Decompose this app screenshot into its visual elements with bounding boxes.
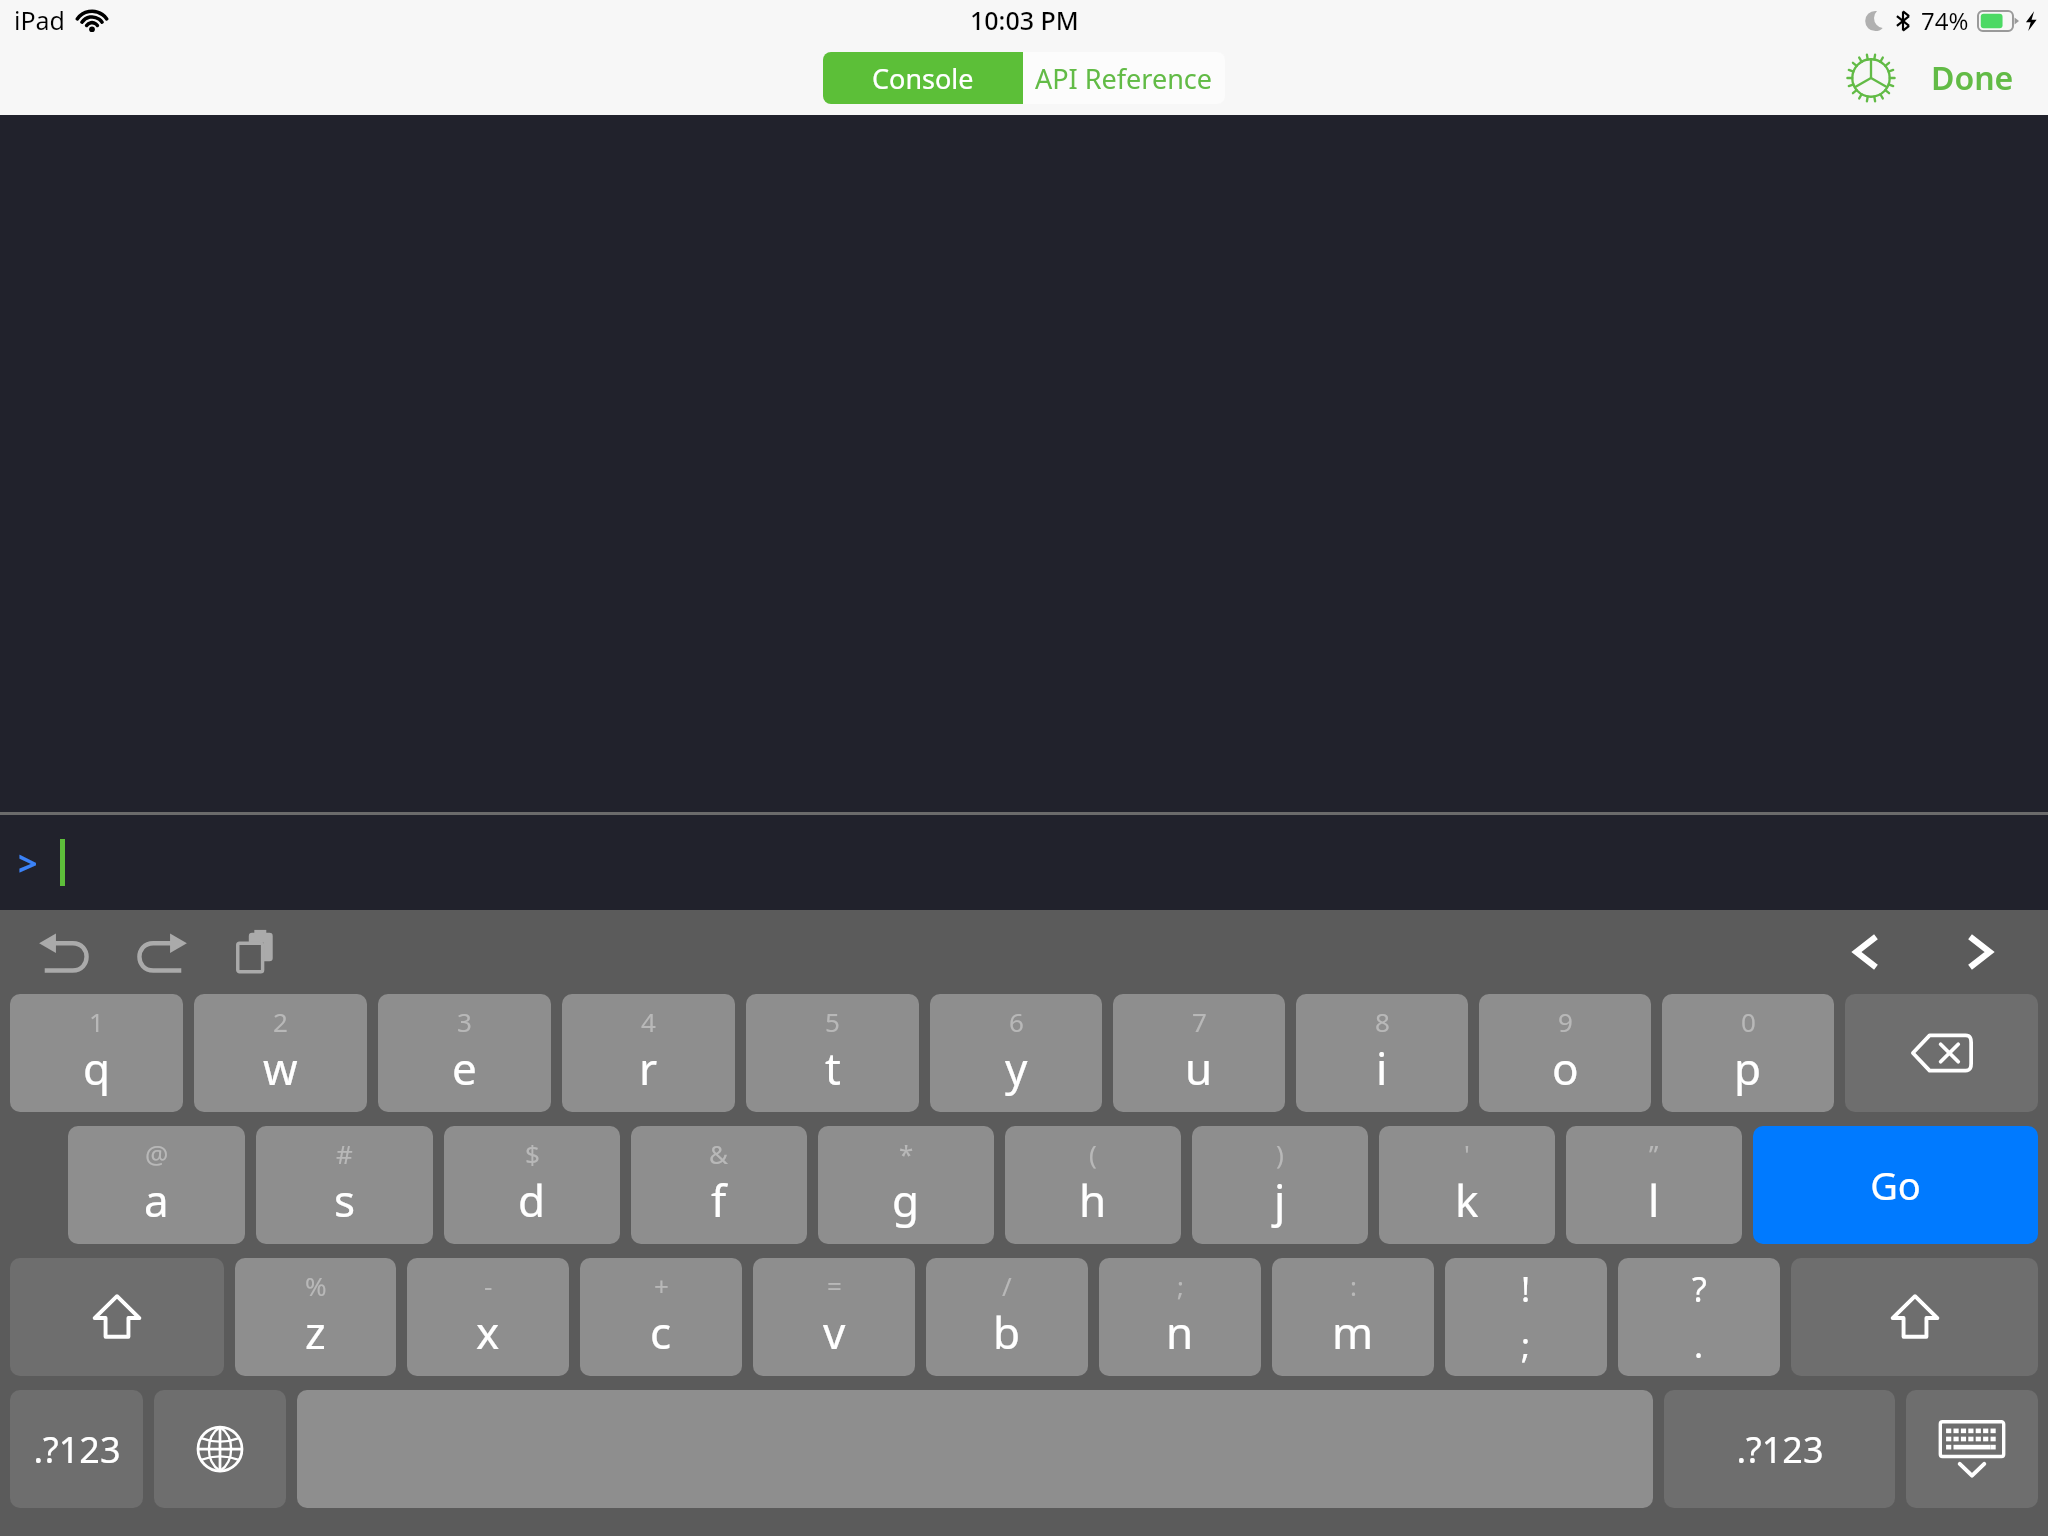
staticText: i [1376, 1038, 1388, 1098]
staticText: ) [1276, 1136, 1284, 1171]
staticText: s [334, 1170, 356, 1230]
staticText: x [476, 1302, 500, 1362]
button[interactable]: 6 [930, 994, 1102, 1112]
button[interactable]: Hide keyboard [1906, 1390, 2038, 1508]
staticText: > [18, 840, 38, 886]
staticText: API Reference [1035, 60, 1213, 97]
staticText: p [1734, 1038, 1762, 1098]
button[interactable]: ” [1566, 1126, 1742, 1244]
button[interactable]: * [818, 1126, 994, 1244]
staticText: w [263, 1038, 298, 1098]
button[interactable]: Undo [30, 916, 102, 988]
staticText: g [892, 1170, 920, 1230]
staticText: 2 [273, 1004, 288, 1039]
staticText: v [823, 1302, 846, 1362]
button[interactable]: 2 [194, 994, 367, 1112]
staticText: : [1350, 1268, 1357, 1303]
staticText: 10:03 PM [970, 3, 1079, 37]
button[interactable]: + [580, 1258, 742, 1376]
button[interactable]: 5 [746, 994, 919, 1112]
button[interactable]: - [407, 1258, 569, 1376]
button[interactable]: > [0, 815, 2048, 910]
button[interactable]: 0 [1662, 994, 1834, 1112]
button[interactable]: Done [1925, 48, 2020, 108]
button[interactable]: 9 [1479, 994, 1651, 1112]
staticText: 7 [1192, 1004, 1207, 1039]
staticText: ( [1089, 1136, 1097, 1171]
staticText: 74% [1921, 4, 1969, 37]
staticText: 3 [457, 1004, 472, 1039]
button[interactable]: Console [823, 52, 1023, 104]
staticText: * [899, 1136, 914, 1171]
button[interactable]: ? [1618, 1258, 1780, 1376]
staticText: ; [1177, 1268, 1184, 1303]
staticText: n [1166, 1302, 1194, 1362]
button[interactable]: 4 [562, 994, 735, 1112]
staticText: / [1002, 1268, 1012, 1303]
button[interactable]: .?123 [1664, 1390, 1895, 1508]
staticText: e [452, 1038, 477, 1098]
staticText: ” [1649, 1136, 1659, 1171]
button[interactable]: ; [1099, 1258, 1261, 1376]
button[interactable]: 1 [10, 994, 183, 1112]
staticText: 6 [1009, 1004, 1024, 1039]
button[interactable]: Go [1753, 1126, 2038, 1244]
button[interactable]: 8 [1296, 994, 1468, 1112]
staticText: z [305, 1302, 326, 1362]
button[interactable]: Change keyboard [154, 1390, 286, 1508]
staticText: Go [1870, 1159, 1921, 1211]
staticText: @ [145, 1136, 169, 1171]
button[interactable]: / [926, 1258, 1088, 1376]
staticText: j [1274, 1170, 1286, 1230]
button[interactable]: Paste [222, 916, 294, 988]
staticText: + [654, 1268, 669, 1303]
staticText: y [1005, 1038, 1028, 1098]
button[interactable]: Settings [1839, 46, 1903, 110]
button[interactable]: ' [1379, 1126, 1555, 1244]
button[interactable]: Delete [1845, 994, 2038, 1112]
button[interactable]: Shift [1791, 1258, 2038, 1376]
staticText: ; [1521, 1322, 1531, 1368]
staticText: .?123 [1736, 1425, 1824, 1474]
button[interactable]: @ [68, 1126, 245, 1244]
staticText: . [1694, 1322, 1704, 1368]
staticText: c [650, 1302, 672, 1362]
staticText: m [1332, 1302, 1374, 1362]
staticText: u [1185, 1038, 1213, 1098]
button[interactable]: : [1272, 1258, 1434, 1376]
button[interactable]: & [631, 1126, 807, 1244]
button[interactable]: Shift [10, 1258, 224, 1376]
button[interactable]: .?123 [10, 1390, 143, 1508]
button[interactable]: API Reference [1023, 52, 1225, 104]
staticText: a [144, 1170, 169, 1230]
button[interactable]: $ [444, 1126, 620, 1244]
staticText: l [1648, 1170, 1660, 1230]
staticText: ? [1692, 1266, 1707, 1312]
button[interactable]: 3 [378, 994, 551, 1112]
staticText: 8 [1375, 1004, 1390, 1039]
button[interactable]: Previous [1832, 917, 1902, 987]
staticText: # [336, 1136, 353, 1171]
button[interactable]: = [753, 1258, 915, 1376]
staticText: d [518, 1170, 546, 1230]
button[interactable]: ! [1445, 1258, 1607, 1376]
staticText: % [305, 1268, 327, 1303]
button[interactable]: 7 [1113, 994, 1285, 1112]
button[interactable]: Redo [124, 916, 196, 988]
staticText: 0 [1741, 1004, 1756, 1039]
staticText: k [1455, 1170, 1479, 1230]
staticText: h [1079, 1170, 1107, 1230]
staticText: 1 [89, 1004, 104, 1039]
staticText: b [993, 1302, 1021, 1362]
button[interactable]: ) [1192, 1126, 1368, 1244]
staticText: ! [1521, 1266, 1531, 1312]
button[interactable]: % [235, 1258, 396, 1376]
staticText: Done [1931, 56, 2014, 100]
button[interactable]: # [256, 1126, 433, 1244]
staticText: f [711, 1170, 727, 1230]
button[interactable]: Next [1944, 917, 2014, 987]
staticText: 5 [825, 1004, 840, 1039]
staticText: = [827, 1268, 842, 1303]
button[interactable]: ( [1005, 1126, 1181, 1244]
